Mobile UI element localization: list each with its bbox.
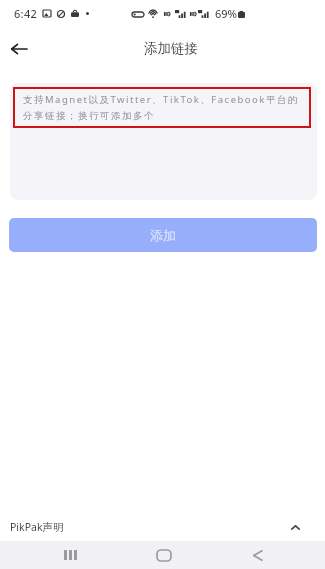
button[interactable]: Home: [132, 541, 196, 569]
button[interactable]: 支持Magnet以及Twitter、TikTok、Facebook平台的分享链接…: [13, 87, 311, 128]
button[interactable]: Back: [2, 32, 36, 66]
button[interactable]: PikPak声明: [0, 505, 325, 541]
staticText: PikPak声明: [10, 520, 64, 534]
other: Expand: [289, 521, 301, 533]
staticText: 69%: [215, 6, 237, 21]
staticText: 6:42: [14, 6, 38, 21]
button[interactable]: Recent apps: [38, 541, 102, 569]
staticText: 添加链接: [144, 40, 198, 57]
staticText: 添加: [150, 227, 176, 243]
button[interactable]: 添加: [9, 218, 317, 252]
staticText: 支持Magnet以及Twitter、TikTok、Facebook平台的分享链接…: [23, 93, 303, 121]
button[interactable]: Back: [225, 541, 289, 569]
